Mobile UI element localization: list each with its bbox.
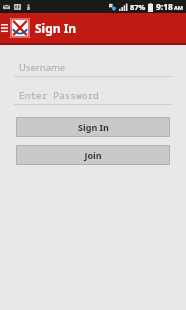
staticText: 9:18 <box>156 1 173 13</box>
staticText: 87% <box>130 2 146 12</box>
staticText: Username <box>19 61 66 74</box>
button[interactable]: Open navigation drawer <box>0 13 8 43</box>
button[interactable]: App logo <box>10 18 30 38</box>
staticText: Join <box>84 149 102 161</box>
staticText: Enter Password <box>19 89 99 102</box>
button[interactable]: Join <box>16 145 170 165</box>
button[interactable]: Enter Password <box>14 87 172 105</box>
staticText: AM <box>174 4 183 11</box>
staticText: Sign In <box>35 20 77 36</box>
staticText: Sign In <box>78 121 109 133</box>
button[interactable]: Sign In <box>16 117 170 137</box>
button[interactable]: Username <box>14 59 172 77</box>
